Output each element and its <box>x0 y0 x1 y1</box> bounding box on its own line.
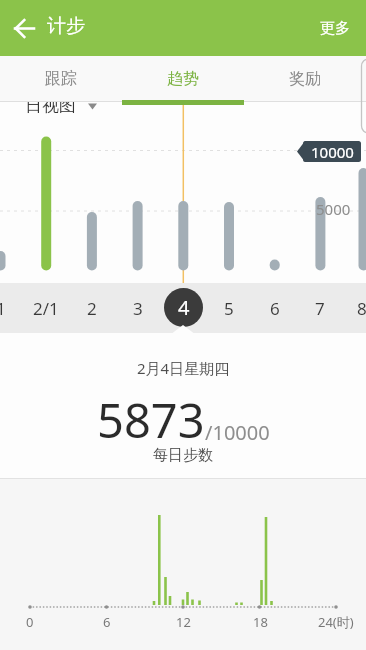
staticText: 日视图 <box>25 95 76 116</box>
button[interactable]: 1 <box>0 283 24 333</box>
button[interactable]: 更多 <box>314 13 356 44</box>
staticText: 6 <box>103 613 111 629</box>
staticText: 24(时) <box>318 613 354 629</box>
staticText: 奖励 <box>289 69 321 89</box>
staticText: 0 <box>26 613 34 629</box>
button[interactable]: 2/1 <box>23 283 69 333</box>
button[interactable]: 8 <box>339 283 366 333</box>
staticText: 6 <box>270 297 280 320</box>
button[interactable]: 6 <box>252 283 298 333</box>
button[interactable]: 5 <box>206 283 252 333</box>
button[interactable]: 趋势 <box>122 56 244 102</box>
staticText: 5000 <box>316 199 351 219</box>
staticText: 2 <box>87 297 97 320</box>
staticText: 2月4日星期四 <box>137 358 230 378</box>
button[interactable]: 奖励 <box>244 56 366 102</box>
button[interactable]: 3 <box>115 283 161 333</box>
staticText: 每日步数 <box>153 446 213 465</box>
staticText: 5 <box>224 297 234 320</box>
staticText: 跟踪 <box>45 69 77 89</box>
staticText: 更多 <box>320 19 350 38</box>
button[interactable]: 2 <box>69 283 115 333</box>
button[interactable]: 跟踪 <box>0 56 122 102</box>
staticText: 18 <box>253 613 268 629</box>
staticText: 8 <box>357 297 366 320</box>
staticText: /10000 <box>205 419 270 446</box>
button[interactable]: 4 <box>164 288 203 327</box>
staticText: 7 <box>315 297 325 320</box>
staticText: 计步 <box>47 14 85 38</box>
staticText: 2/1 <box>33 297 59 320</box>
staticText: 3 <box>133 297 143 320</box>
staticText: 5873 <box>97 388 205 452</box>
staticText: 4 <box>178 294 190 321</box>
staticText: 10000 <box>311 142 354 162</box>
staticText: 趋势 <box>167 69 199 89</box>
button[interactable]: 7 <box>297 283 343 333</box>
staticText: 1 <box>0 297 6 320</box>
staticText: 12 <box>176 613 191 629</box>
button[interactable] <box>18 100 104 120</box>
button[interactable] <box>6 10 42 46</box>
